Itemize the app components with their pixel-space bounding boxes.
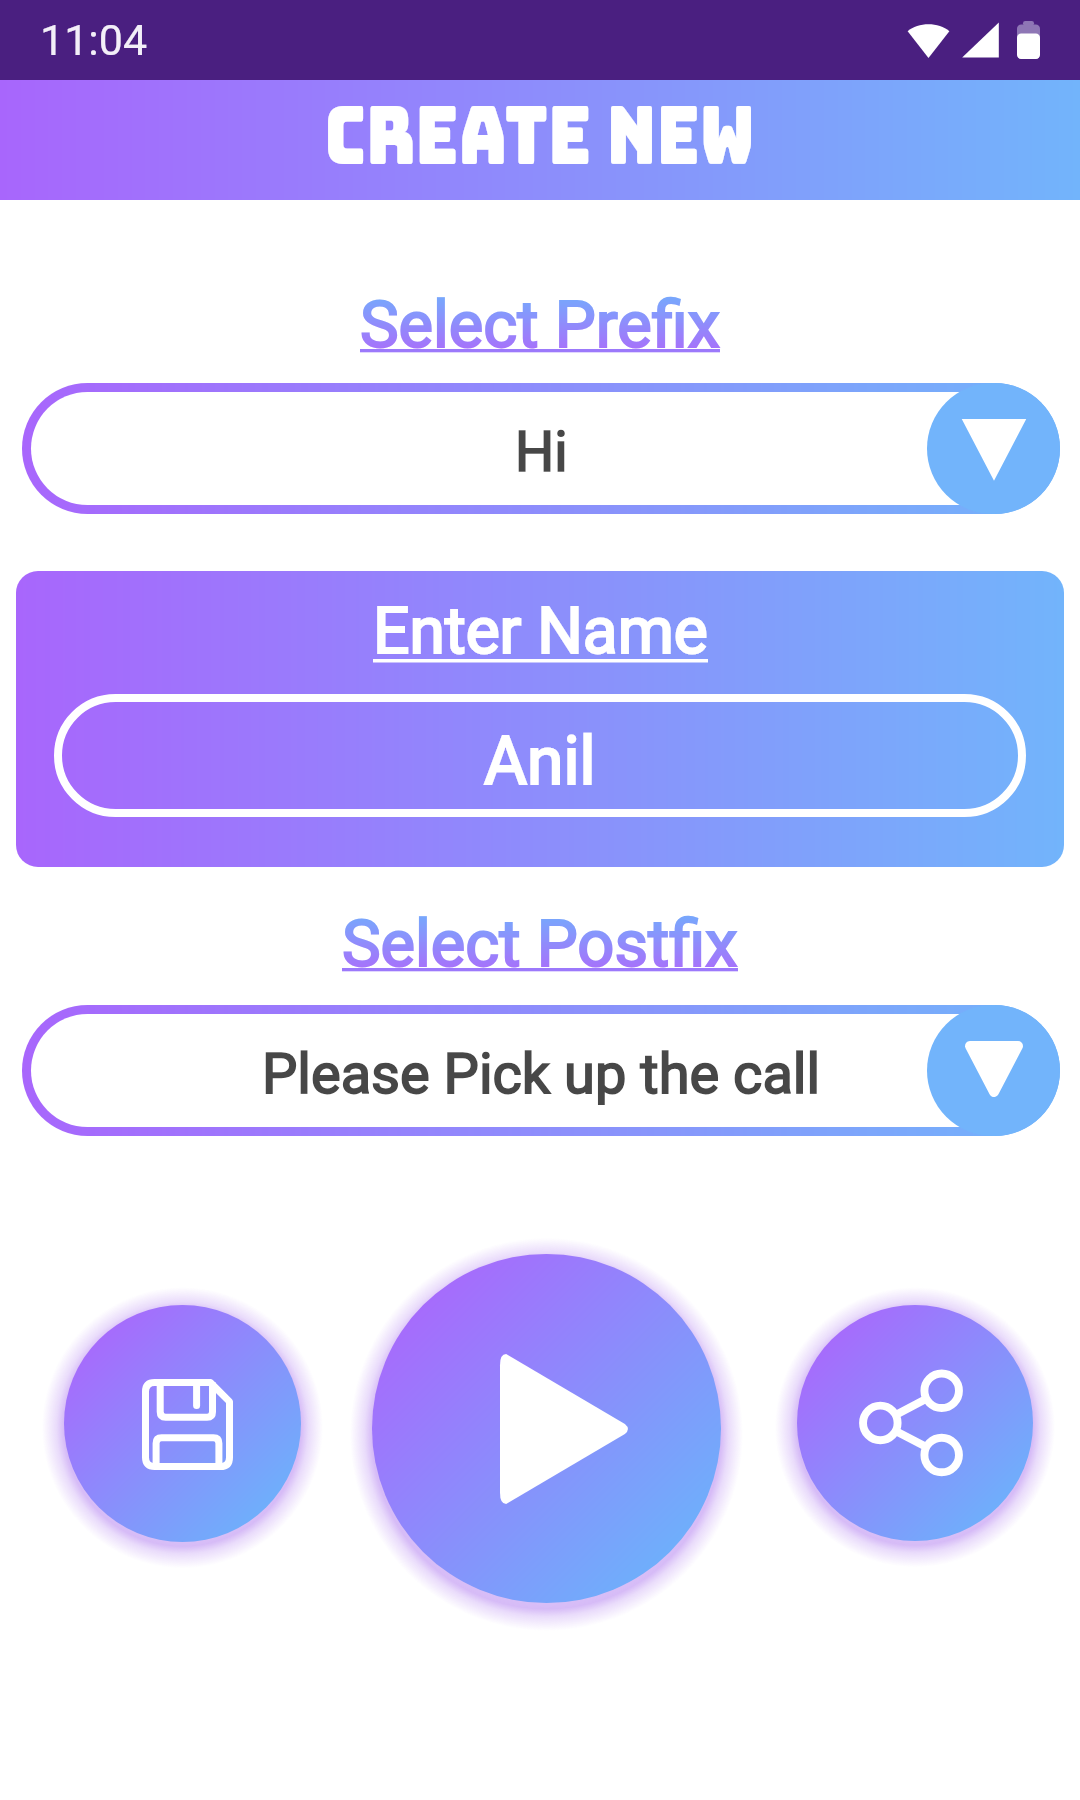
button[interactable]: Open dropdown bbox=[927, 1005, 1060, 1136]
staticText: Please Pick up the call bbox=[262, 1041, 821, 1107]
button[interactable]: Hi bbox=[22, 383, 1060, 514]
staticText: Select Postfix bbox=[342, 906, 738, 982]
staticText: Enter Name bbox=[373, 594, 708, 669]
staticText: Anil bbox=[484, 723, 596, 800]
button[interactable]: Save bbox=[64, 1305, 301, 1542]
button[interactable]: Open dropdown bbox=[927, 383, 1060, 514]
staticText: 11:04 bbox=[40, 15, 148, 65]
button[interactable]: Play bbox=[372, 1254, 721, 1603]
staticText: Hi bbox=[515, 420, 568, 484]
button[interactable]: Please Pick up the call bbox=[22, 1005, 1060, 1136]
button[interactable]: Share bbox=[797, 1305, 1033, 1541]
button[interactable]: Anil bbox=[54, 694, 1026, 817]
staticText: CREATE NEW bbox=[324, 82, 756, 188]
staticText: Select Prefix bbox=[360, 287, 720, 363]
